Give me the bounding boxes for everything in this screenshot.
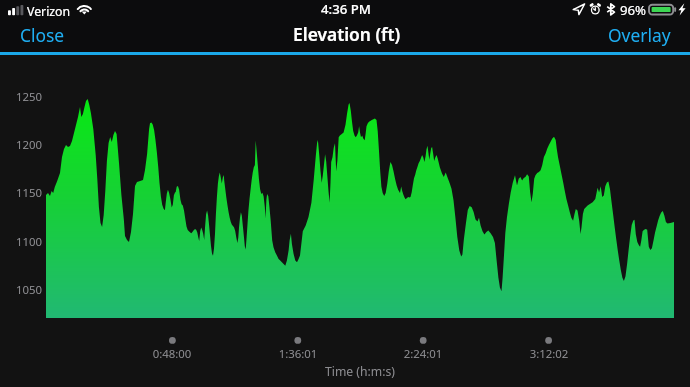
button[interactable]: Overlay	[593, 18, 690, 52]
staticText: 1100	[16, 234, 43, 250]
staticText: Elevation (ft)	[293, 22, 401, 46]
staticText: 0:48:00	[142, 346, 202, 362]
staticText: Time (h:m:s)	[300, 363, 420, 380]
staticText: 1200	[16, 137, 43, 153]
staticText: 2:24:01	[393, 346, 453, 362]
staticText: 1:36:01	[268, 346, 328, 362]
button[interactable]: Close	[5, 18, 80, 52]
staticText: 96%	[620, 1, 647, 19]
staticText: Close	[20, 23, 65, 47]
staticText: 4:36 PM	[321, 0, 371, 18]
staticText: 1050	[16, 282, 43, 298]
staticText: 1150	[16, 185, 43, 201]
staticText: Verizon	[27, 3, 71, 20]
staticText: 3:12:02	[519, 346, 579, 362]
staticText: 1250	[16, 89, 43, 105]
staticText: Overlay	[608, 23, 671, 47]
